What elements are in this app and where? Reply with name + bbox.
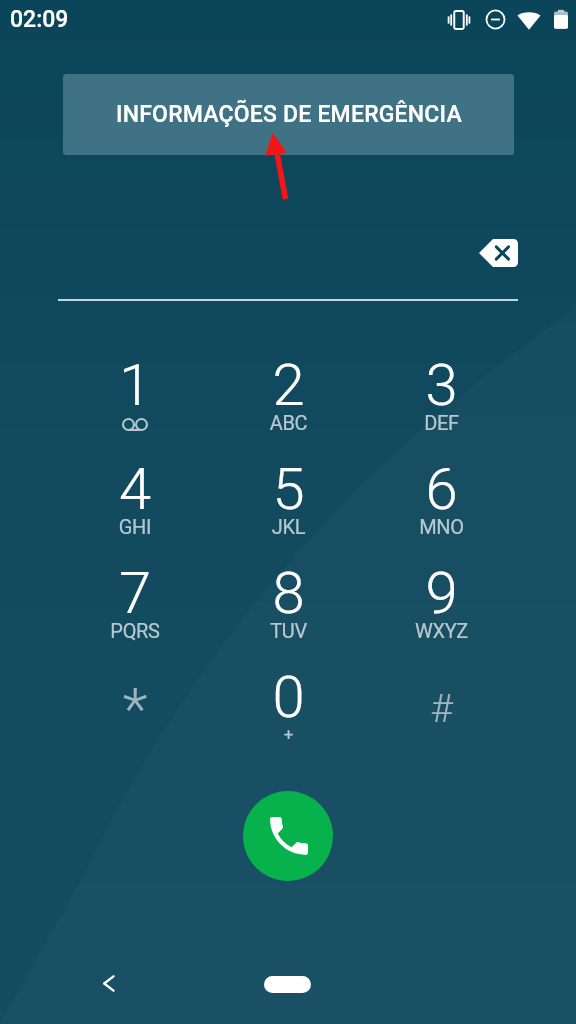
staticText: 8 (212, 559, 365, 627)
staticText: MNO (365, 515, 518, 538)
staticText: * (58, 675, 212, 743)
staticText: DEF (365, 411, 518, 434)
staticText: PQRS (58, 619, 212, 642)
staticText: 02:09 (10, 6, 69, 33)
staticText: 3 (365, 351, 518, 419)
staticText: JKL (212, 515, 365, 538)
button[interactable]: 0 (212, 652, 365, 756)
staticText: TUV (212, 619, 365, 642)
staticText: GHI (58, 515, 212, 538)
button[interactable]: 3 (365, 340, 518, 444)
staticText: + (212, 724, 365, 744)
button[interactable]: # (365, 652, 518, 756)
button[interactable]: 4 (58, 444, 212, 548)
staticText: # (365, 686, 518, 732)
button[interactable]: 1 (58, 340, 212, 444)
staticText: 6 (365, 455, 518, 523)
button[interactable]: Call (243, 791, 333, 881)
button[interactable]: 5 (212, 444, 365, 548)
staticText: 2 (212, 351, 365, 419)
staticText: 7 (58, 559, 212, 627)
staticText: 5 (212, 455, 365, 523)
button[interactable]: Home (264, 976, 311, 993)
button[interactable]: 9 (365, 548, 518, 652)
button[interactable]: 8 (212, 548, 365, 652)
staticText: 4 (58, 455, 212, 523)
button[interactable]: INFORMAÇÕES DE EMERGÊNCIA (63, 74, 514, 155)
button[interactable]: Back (89, 962, 131, 1004)
staticText: WXYZ (365, 619, 518, 642)
staticText: 9 (365, 559, 518, 627)
staticText: INFORMAÇÕES DE EMERGÊNCIA (116, 101, 462, 128)
staticText: ABC (212, 411, 365, 434)
staticText: 1 (58, 351, 212, 419)
button[interactable]: Backspace (470, 228, 526, 278)
button[interactable]: 2 (212, 340, 365, 444)
staticText: 0 (212, 663, 365, 731)
button[interactable]: 7 (58, 548, 212, 652)
button[interactable]: 6 (365, 444, 518, 548)
button[interactable]: * (58, 652, 212, 756)
